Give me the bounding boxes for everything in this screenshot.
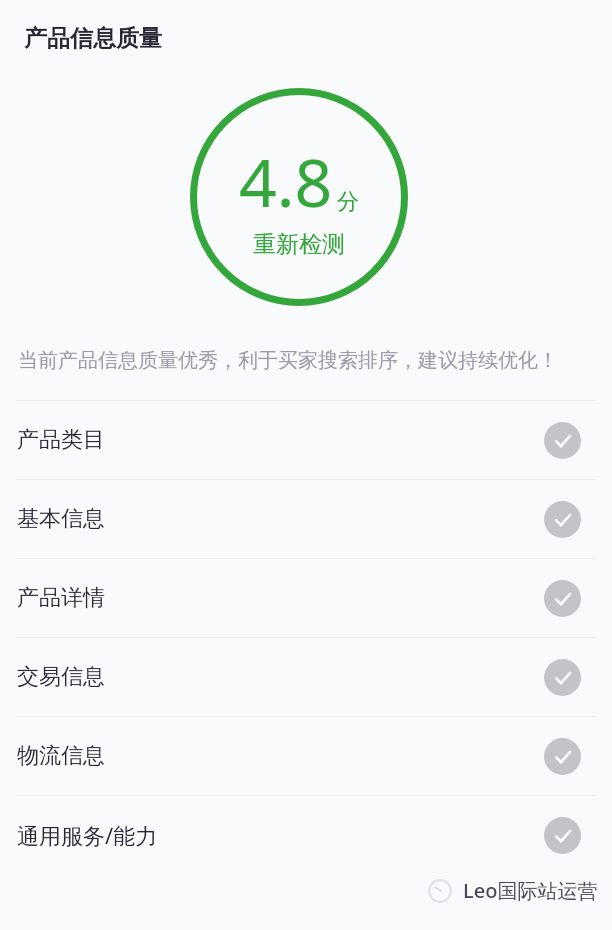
staticText: 产品类目 [17,426,105,454]
staticText: 交易信息 [17,663,105,691]
button[interactable]: 产品类目 [0,401,612,479]
staticText: 产品信息质量 [24,24,162,53]
button[interactable]: 交易信息 [0,638,612,716]
staticText: 分 [337,188,359,216]
other: 已完成 产品详情 [544,580,581,617]
button[interactable]: 物流信息 [0,717,612,795]
staticText: 物流信息 [17,742,105,770]
staticText: 基本信息 [17,505,105,533]
other: 已完成 通用服务/能力 [544,817,581,854]
other: 已完成 物流信息 [544,738,581,775]
staticText: 当前产品信息质量优秀，利于买家搜索排序，建议持续优化！ [18,348,596,373]
button[interactable]: 产品详情 [0,559,612,637]
other: 已完成 产品类目 [544,422,581,459]
button[interactable]: 通用服务/能力 [0,796,612,874]
staticText: 重新检测 [253,230,345,259]
other: 已完成 交易信息 [544,659,581,696]
staticText: Leo国际站运营 [463,877,598,904]
staticText: 产品详情 [17,584,105,612]
button[interactable]: 基本信息 [0,480,612,558]
button[interactable]: 4.8 [190,88,408,306]
staticText: 4.8 [239,136,333,226]
other: 已完成 基本信息 [544,501,581,538]
staticText: 通用服务/能力 [17,820,158,850]
